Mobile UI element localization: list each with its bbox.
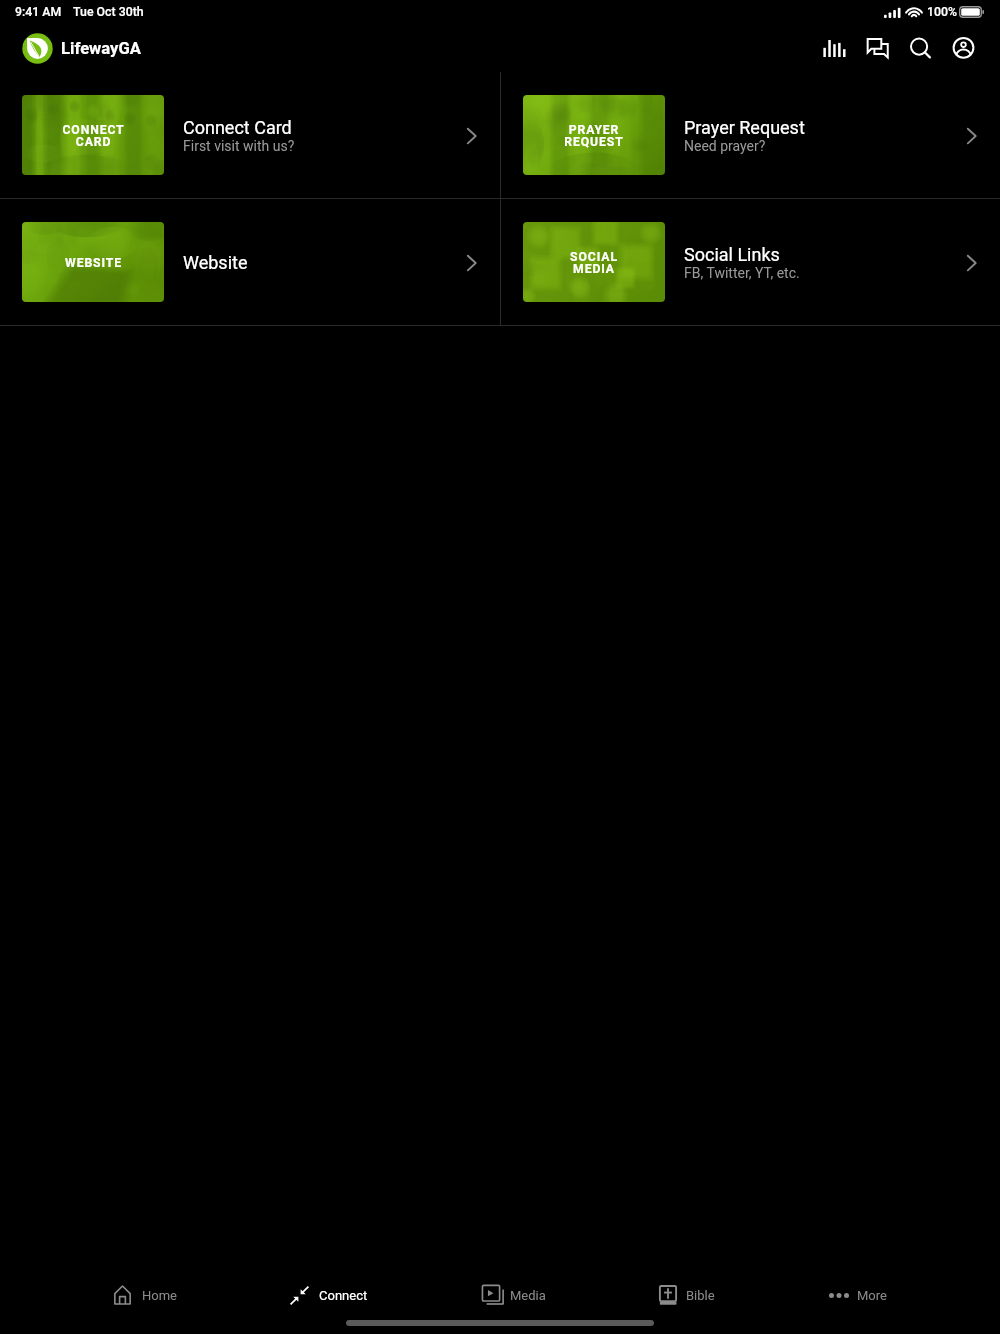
staticText: Connect xyxy=(319,1288,368,1303)
button[interactable]: Messages xyxy=(856,24,899,72)
staticText: First visit with us? xyxy=(183,138,295,154)
button[interactable]: More xyxy=(829,1274,887,1316)
button[interactable]: WEBSITE xyxy=(0,199,500,325)
button[interactable]: Media xyxy=(482,1274,546,1316)
staticText: FB, Twitter, YT, etc. xyxy=(684,265,800,281)
staticText: Prayer Request xyxy=(684,117,805,138)
button[interactable]: SOCIAL MEDIA xyxy=(501,199,1000,325)
button[interactable]: Activity xyxy=(813,24,856,72)
staticText: Tue Oct 30th xyxy=(73,5,144,19)
button[interactable]: Home xyxy=(114,1274,177,1316)
button[interactable]: Search xyxy=(899,24,942,72)
button[interactable]: PRAYER REQUEST xyxy=(501,72,1000,198)
staticText: SOCIAL MEDIA xyxy=(570,250,618,276)
button[interactable]: Connect xyxy=(290,1274,368,1316)
staticText: More xyxy=(857,1288,887,1303)
staticText: Need prayer? xyxy=(684,138,766,154)
staticText: PRAYER REQUEST xyxy=(564,123,624,149)
button[interactable]: Account xyxy=(942,24,985,72)
button[interactable]: CONNECT CARD xyxy=(0,72,500,198)
staticText: Connect Card xyxy=(183,117,292,138)
staticText: Home xyxy=(142,1288,177,1303)
staticText: LifewayGA xyxy=(61,39,141,58)
staticText: WEBSITE xyxy=(65,256,122,270)
button[interactable]: Bible xyxy=(659,1274,715,1316)
staticText: Media xyxy=(510,1288,546,1303)
staticText: Website xyxy=(183,252,248,273)
staticText: 9:41 AM xyxy=(15,5,62,19)
staticText: Social Links xyxy=(684,244,780,265)
staticText: Bible xyxy=(686,1288,715,1303)
staticText: CONNECT CARD xyxy=(62,123,125,149)
button[interactable]: LifewayGA xyxy=(22,33,141,64)
staticText: 100% xyxy=(927,5,957,19)
